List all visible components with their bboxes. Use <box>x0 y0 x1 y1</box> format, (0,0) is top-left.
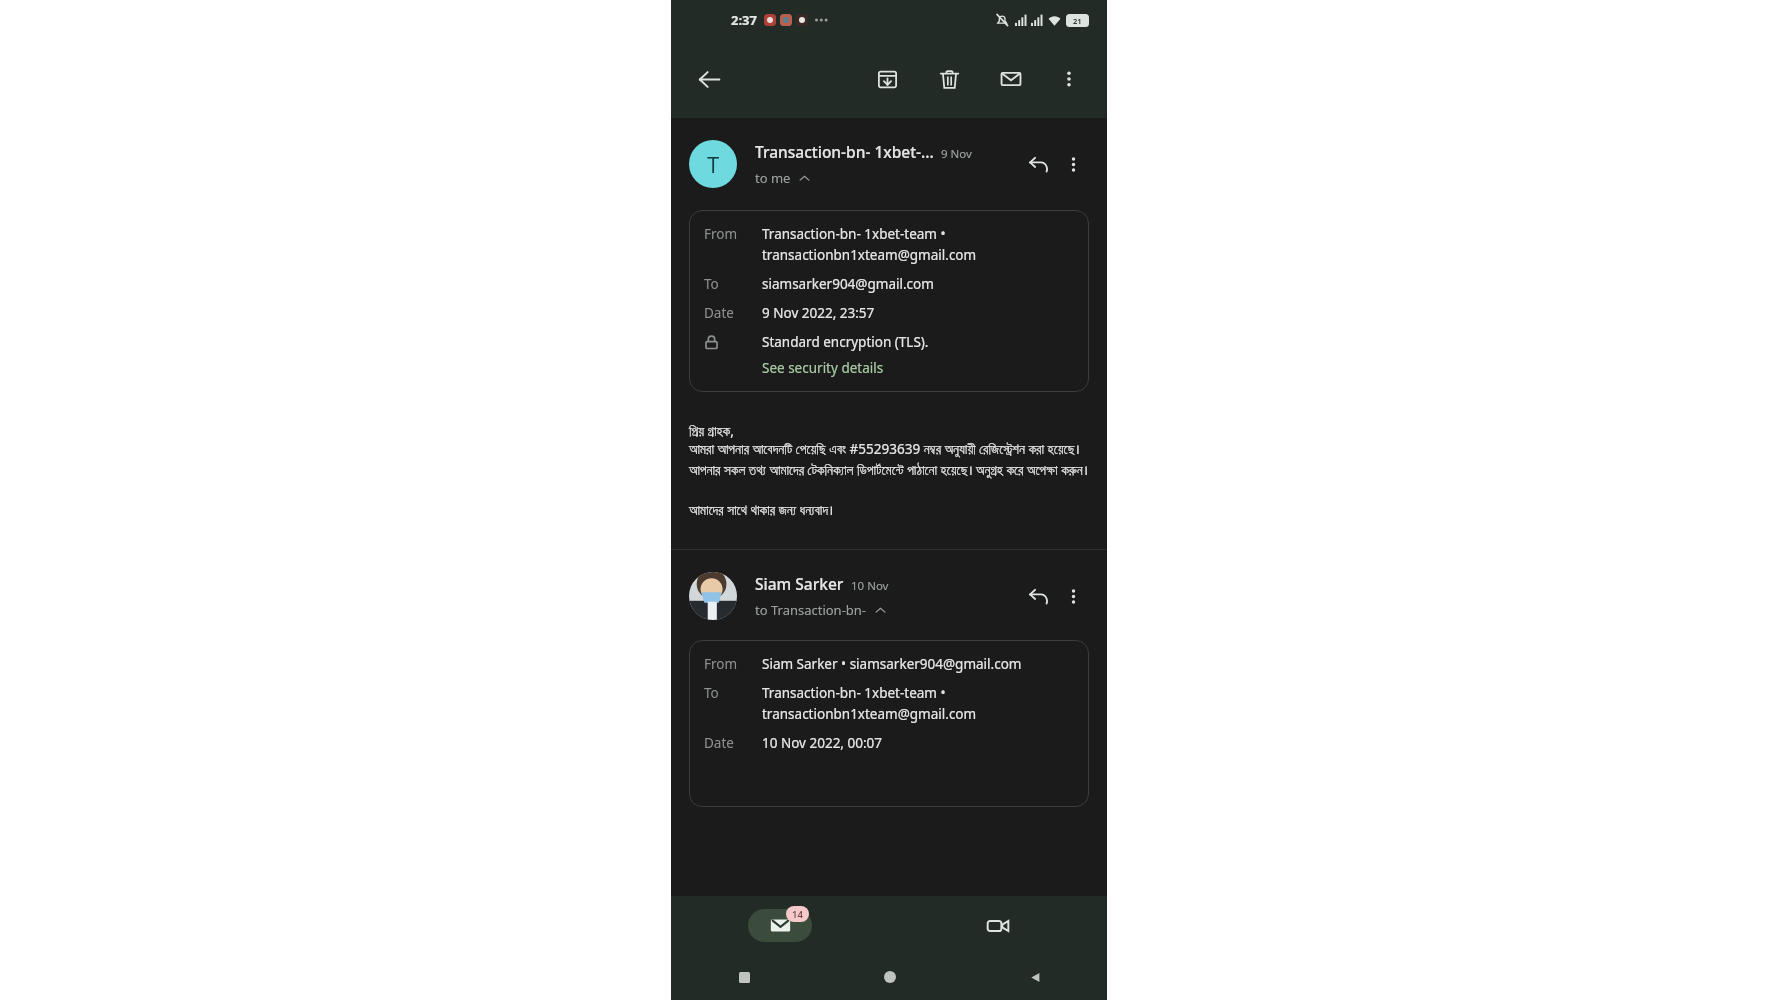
button[interactable]: More options <box>1057 580 1089 612</box>
staticText: 14 <box>792 908 803 921</box>
staticText: আমাদের সাথে থাকার জন্য ধন্যবাদ। <box>689 501 834 519</box>
staticText: Transaction-bn- 1xbet-... <box>755 141 934 162</box>
staticText: To <box>704 275 719 293</box>
button[interactable]: Back <box>1020 962 1050 992</box>
button[interactable]: Archive <box>869 61 905 97</box>
button[interactable]: Meet <box>966 909 1030 942</box>
button[interactable]: Reply <box>1021 579 1055 613</box>
staticText: 9 Nov 2022, 23:57 <box>762 304 875 322</box>
staticText: Siam Sarker • siamsarker904@gmail.com <box>762 655 1022 673</box>
button[interactable]: Recent apps <box>729 962 759 992</box>
button[interactable]: T <box>671 134 1107 194</box>
button[interactable]: More options <box>1057 148 1089 180</box>
staticText: to me <box>755 169 791 187</box>
staticText: 2:37 <box>731 11 757 29</box>
button[interactable]: Home <box>875 962 905 992</box>
button[interactable]: Mark as unread <box>993 61 1029 97</box>
staticText: to Transaction-bn- <box>755 601 867 619</box>
staticText: Standard encryption (TLS). <box>762 333 929 351</box>
staticText: From <box>704 655 738 673</box>
button[interactable]: More options <box>1051 61 1087 97</box>
staticText: Transaction-bn- 1xbet-team • transaction… <box>762 684 977 723</box>
button[interactable]: Siam Sarker <box>671 566 1107 626</box>
staticText: আমরা আপনার আবেদনটি পেয়েছি এবং #55293639… <box>689 440 1089 479</box>
staticText: Date <box>704 304 734 322</box>
staticText: Date <box>704 734 734 752</box>
staticText: প্রিয় গ্রাহক, <box>689 422 734 440</box>
staticText: Siam Sarker <box>755 573 844 594</box>
staticText: 10 Nov <box>851 578 889 594</box>
staticText: To <box>704 684 719 702</box>
staticText: See security details <box>762 359 884 377</box>
button[interactable]: Delete <box>931 61 967 97</box>
staticText: 10 Nov 2022, 00:07 <box>762 734 883 752</box>
button[interactable]: See security details <box>762 359 884 377</box>
staticText: siamsarker904@gmail.com <box>762 275 934 293</box>
button[interactable]: Mail, 14 unread <box>748 909 812 942</box>
staticText: 21 <box>1073 16 1082 26</box>
staticText: 9 Nov <box>941 146 972 162</box>
button[interactable]: Back <box>691 61 727 97</box>
button[interactable]: Reply <box>1021 147 1055 181</box>
staticText: From <box>704 225 738 243</box>
staticText: T <box>707 149 720 179</box>
staticText: Transaction-bn- 1xbet-team • transaction… <box>762 225 977 264</box>
